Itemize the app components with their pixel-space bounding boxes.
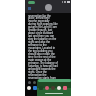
- button[interactable]: [37, 79, 71, 96]
- button[interactable]: App: [27, 86, 31, 90]
- button[interactable]: App: [51, 86, 55, 90]
- button[interactable]: App: [45, 86, 49, 90]
- button[interactable]: App: [33, 86, 37, 90]
- button[interactable]: Back: [25, 4, 71, 13]
- button[interactable]: App: [57, 86, 61, 90]
- staticText: reservation for the place, arrival time …: [28, 14, 58, 79]
- button[interactable]: App: [63, 86, 67, 90]
